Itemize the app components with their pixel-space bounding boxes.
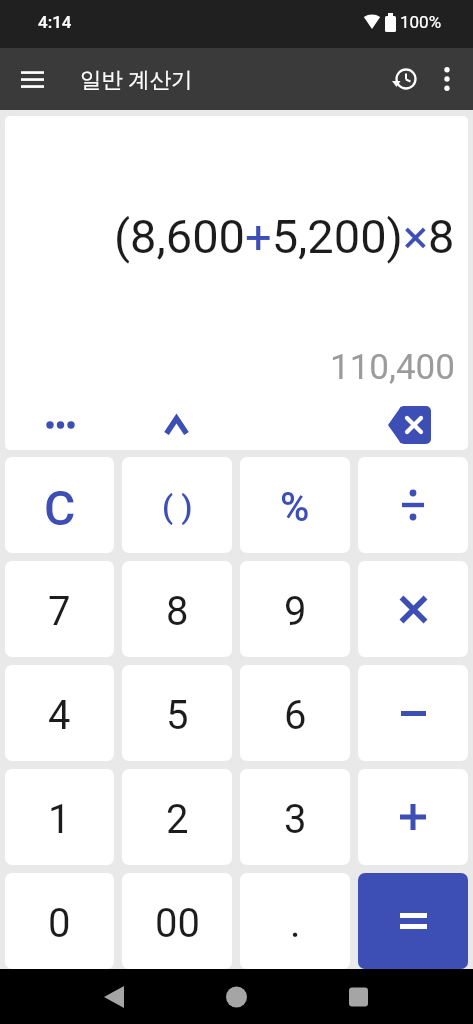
staticText: 5 xyxy=(166,692,189,739)
button[interactable]: . xyxy=(240,873,350,969)
button[interactable] xyxy=(157,969,315,1024)
staticText: 7 xyxy=(48,588,71,635)
staticText: 6 xyxy=(284,692,307,739)
staticText: 110,400 xyxy=(330,347,455,388)
staticText: 9 xyxy=(284,588,307,635)
button[interactable]: 00 xyxy=(122,873,232,969)
button[interactable] xyxy=(12,59,52,99)
button[interactable]: 0 xyxy=(5,873,114,969)
button[interactable]: % xyxy=(240,457,350,553)
button[interactable]: 9 xyxy=(240,561,350,657)
button[interactable] xyxy=(387,406,431,444)
button[interactable]: 8 xyxy=(122,561,232,657)
button[interactable] xyxy=(0,969,157,1024)
staticText: 일반 계산기 xyxy=(80,66,193,93)
staticText: 1 xyxy=(48,796,71,843)
button[interactable] xyxy=(358,873,468,969)
staticText: ( ) xyxy=(162,488,193,526)
staticText: 00 xyxy=(155,900,200,947)
button[interactable]: ( ) xyxy=(122,457,232,553)
staticText: 8 xyxy=(166,588,189,635)
staticText: 4 xyxy=(48,692,71,739)
button[interactable]: 7 xyxy=(5,561,114,657)
staticText: 0 xyxy=(48,900,71,947)
button[interactable] xyxy=(315,969,473,1024)
button[interactable]: 3 xyxy=(240,769,350,865)
button[interactable] xyxy=(358,769,468,865)
staticText: 3 xyxy=(284,796,307,843)
staticText: C xyxy=(44,480,76,536)
button[interactable]: 2 xyxy=(122,769,232,865)
button[interactable]: 6 xyxy=(240,665,350,761)
button[interactable] xyxy=(36,406,84,444)
button[interactable]: 4 xyxy=(5,665,114,761)
button[interactable]: C xyxy=(5,457,114,553)
button[interactable]: 5 xyxy=(122,665,232,761)
button[interactable] xyxy=(383,57,427,101)
button[interactable] xyxy=(358,457,468,553)
staticText: 100% xyxy=(400,12,442,32)
staticText: (8,600+5,200)×8 xyxy=(114,209,455,264)
staticText: 4:14 xyxy=(38,12,72,32)
button[interactable] xyxy=(358,561,468,657)
button[interactable] xyxy=(358,665,468,761)
staticText: 2 xyxy=(166,796,189,843)
staticText: . xyxy=(290,900,301,947)
button[interactable]: 1 xyxy=(5,769,114,865)
button[interactable] xyxy=(427,59,467,99)
staticText: % xyxy=(280,484,310,531)
button[interactable] xyxy=(152,406,200,444)
